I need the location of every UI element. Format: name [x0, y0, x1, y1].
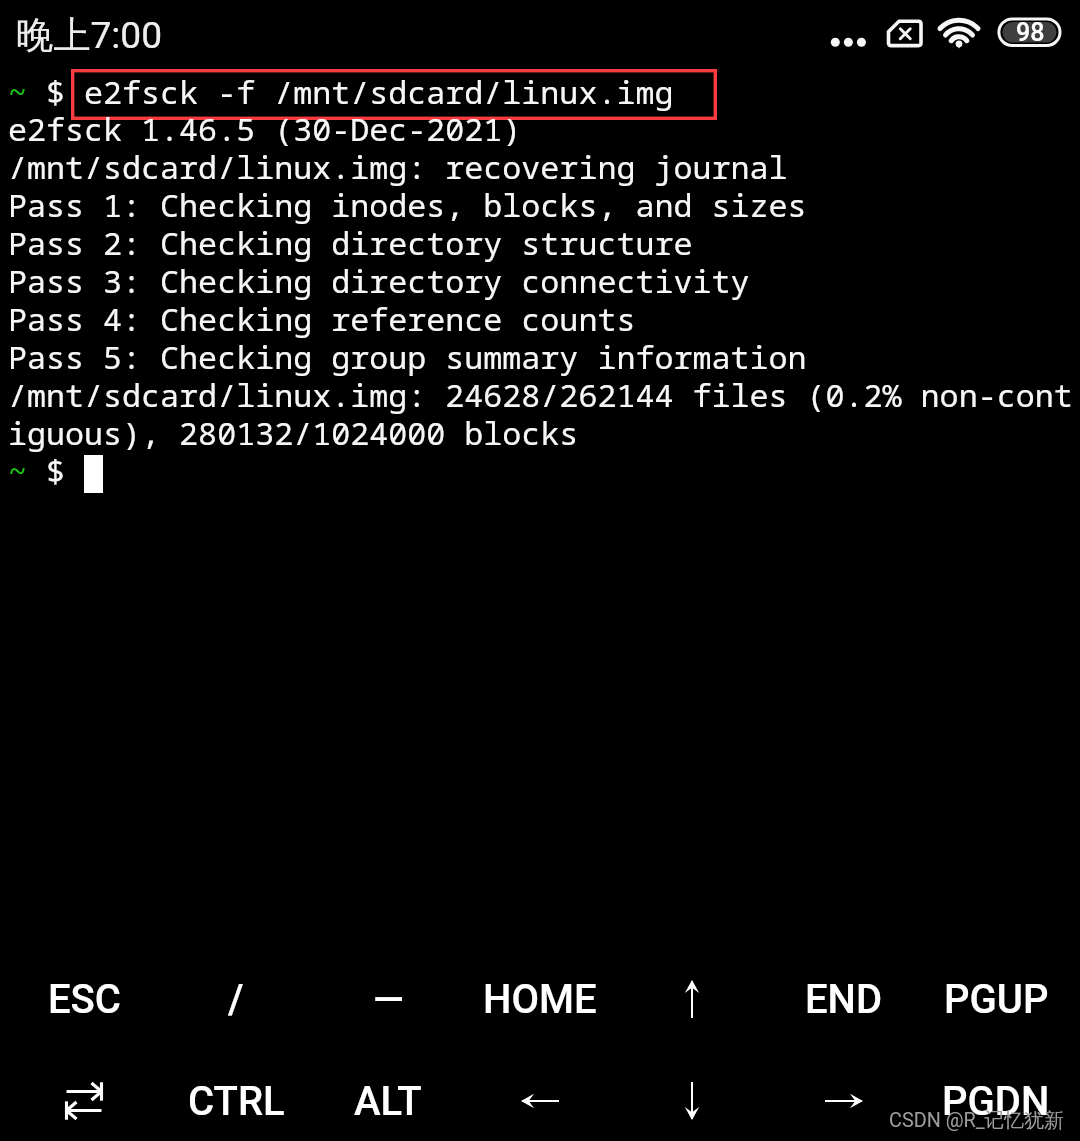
- other: Arrow up: [670, 977, 714, 1021]
- staticText: e2fsck 1.46.5 (30-Dec-2021): [8, 111, 522, 149]
- staticText: CTRL: [188, 1078, 285, 1125]
- staticText: /mnt/sdcard/linux.img: recovering journa…: [8, 149, 788, 187]
- staticText: Pass 2: Checking directory structure: [8, 225, 693, 263]
- staticText: /: [228, 976, 244, 1023]
- staticText: Pass 5: Checking group summary informati…: [8, 339, 807, 377]
- staticText: Pass 1: Checking inodes, blocks, and siz…: [8, 187, 807, 225]
- button[interactable]: Arrow left: [464, 1050, 616, 1141]
- button[interactable]: Tab: [8, 1050, 160, 1141]
- other: Battery 98 percent: [995, 15, 1064, 49]
- staticText: HOME: [483, 976, 597, 1023]
- other: Arrow down: [670, 1079, 714, 1123]
- button[interactable]: PGUP: [920, 948, 1072, 1050]
- staticText: 晚上7:00: [16, 12, 163, 59]
- staticText: Pass 4: Checking reference counts: [8, 301, 636, 339]
- button[interactable]: PGDN: [920, 1050, 1072, 1141]
- staticText: /mnt/sdcard/linux.img: 24628/262144 file…: [8, 377, 1073, 415]
- staticText: CSDN @R_记忆犹新: [889, 1108, 1064, 1133]
- staticText: —: [373, 976, 404, 1023]
- staticText: PGUP: [944, 976, 1049, 1023]
- staticText: ~ $ e2fsck -f /mnt/sdcard/linux.img: [8, 74, 674, 112]
- other: Arrow right: [822, 1079, 866, 1123]
- button[interactable]: /: [160, 948, 312, 1050]
- other: Arrow left: [518, 1079, 562, 1123]
- button[interactable]: Arrow right: [768, 1050, 920, 1141]
- staticText: END: [805, 976, 883, 1023]
- other: No SIM card: [884, 16, 926, 49]
- button[interactable]: —: [312, 948, 464, 1050]
- button[interactable]: CTRL: [160, 1050, 312, 1141]
- other: Tab: [65, 1083, 103, 1119]
- button[interactable]: END: [768, 948, 920, 1050]
- button[interactable]: ESC: [8, 948, 160, 1050]
- button[interactable]: HOME: [464, 948, 616, 1050]
- button[interactable]: Arrow down: [616, 1050, 768, 1141]
- staticText: 98: [1016, 18, 1045, 47]
- staticText: Pass 3: Checking directory connectivity: [8, 263, 750, 301]
- staticText: ALT: [354, 1078, 422, 1125]
- button[interactable]: ALT: [312, 1050, 464, 1141]
- staticText: iguous), 280132/1024000 blocks: [8, 415, 579, 453]
- staticText: PGDN: [942, 1078, 1050, 1125]
- staticText: ESC: [48, 976, 121, 1023]
- staticText: ~ $: [8, 453, 85, 491]
- button[interactable]: Terminal session: [0, 66, 1080, 950]
- other: Wi-Fi connected: [930, 13, 988, 51]
- other: More notifications: [826, 33, 870, 52]
- button[interactable]: Arrow up: [616, 948, 768, 1050]
